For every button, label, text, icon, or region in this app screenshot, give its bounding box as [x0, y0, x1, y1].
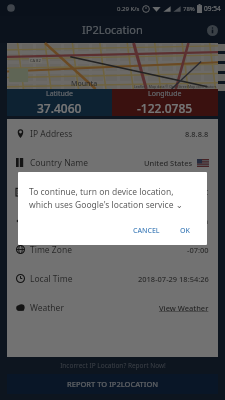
button[interactable]: Time Zone [7, 235, 218, 264]
staticText: To continue, turn on device location, wh… [29, 186, 196, 211]
staticText: 8.8.8.8 [185, 129, 209, 139]
staticText: View Weather [159, 303, 209, 313]
staticText: IP Address [30, 128, 73, 140]
button[interactable]: ISP/Company Name [7, 177, 218, 206]
staticText: ISP/Company Name [30, 186, 111, 198]
staticText: CANCEL [133, 226, 160, 236]
button[interactable]: REPORT TO IP2LOCATION [7, 374, 218, 394]
button[interactable]: OK [174, 223, 196, 239]
staticText: IP2Location [82, 22, 143, 37]
staticText: -07:00 [187, 245, 209, 255]
staticText: REPORT TO IP2LOCATION [67, 379, 159, 389]
staticText: 09:54 [204, 4, 221, 13]
staticText: 0.29 K/s [117, 5, 140, 13]
button[interactable]: Domain Name [7, 206, 218, 235]
button[interactable]: Info [205, 23, 219, 37]
staticText: Leaflet | Map data © OpenStreetMap contr… [134, 84, 217, 89]
staticText: Local Time [30, 273, 73, 285]
staticText: 78% [183, 5, 195, 13]
staticText: OK [180, 226, 190, 236]
staticText: Longitude [148, 89, 182, 99]
staticText: CA 82 [30, 58, 41, 63]
button[interactable]: IP Address [7, 119, 218, 148]
button[interactable]: Longitude [112, 89, 218, 116]
button[interactable]: Latitude [7, 89, 112, 116]
staticText: Google LLC [168, 187, 209, 197]
staticText: Incorrect IP Location? Report Now! [60, 361, 166, 370]
staticText: Weather [30, 302, 64, 314]
staticText: 37.4060 [37, 100, 82, 116]
button[interactable]: Map [7, 43, 218, 89]
button[interactable]: CANCEL [127, 223, 166, 239]
staticText: United States [144, 158, 193, 168]
staticText: 2018-07-29 18:54:26 [138, 274, 209, 284]
button[interactable]: Local Time [7, 264, 218, 293]
staticText: Country Name [30, 157, 89, 169]
staticText: Mounta [71, 79, 98, 89]
button[interactable]: Weather [7, 293, 218, 322]
staticText: Time Zone [30, 244, 72, 256]
staticText: google.com [166, 216, 209, 226]
staticText: -122.0785 [137, 100, 193, 116]
staticText: Latitude [46, 89, 74, 99]
button[interactable]: Country Name [7, 148, 218, 177]
